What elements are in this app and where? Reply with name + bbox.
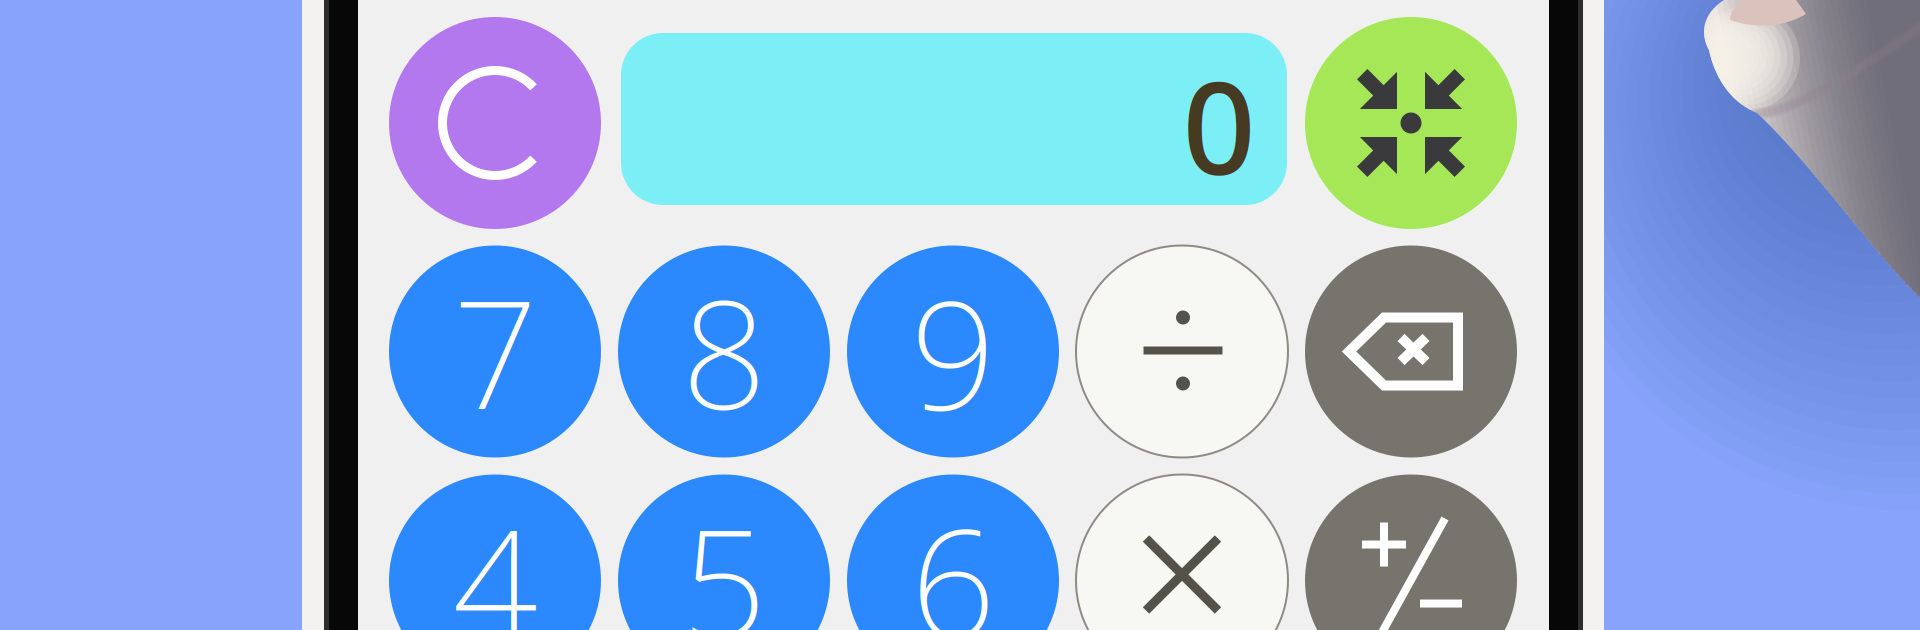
button[interactable]: Clear	[389, 17, 601, 229]
button[interactable]: 5	[618, 474, 830, 630]
button[interactable]: Divide	[1076, 245, 1288, 457]
button[interactable]: Plus or minus	[1305, 474, 1517, 630]
staticText: 5	[681, 481, 766, 630]
staticText: 8	[681, 252, 766, 451]
button[interactable]: 9	[847, 245, 1059, 457]
button[interactable]: 7	[389, 245, 601, 457]
staticText: 6	[910, 481, 995, 630]
staticText: 0	[1182, 40, 1255, 210]
button[interactable]: Collapse	[1305, 17, 1517, 229]
button[interactable]: 8	[618, 245, 830, 457]
staticText: 4	[452, 481, 537, 630]
button[interactable]: 6	[847, 474, 1059, 630]
staticText: 7	[452, 252, 537, 451]
button[interactable]: Delete	[1305, 245, 1517, 457]
staticText: 9	[910, 252, 995, 451]
button[interactable]: 4	[389, 474, 601, 630]
button[interactable]: Multiply	[1076, 474, 1288, 630]
